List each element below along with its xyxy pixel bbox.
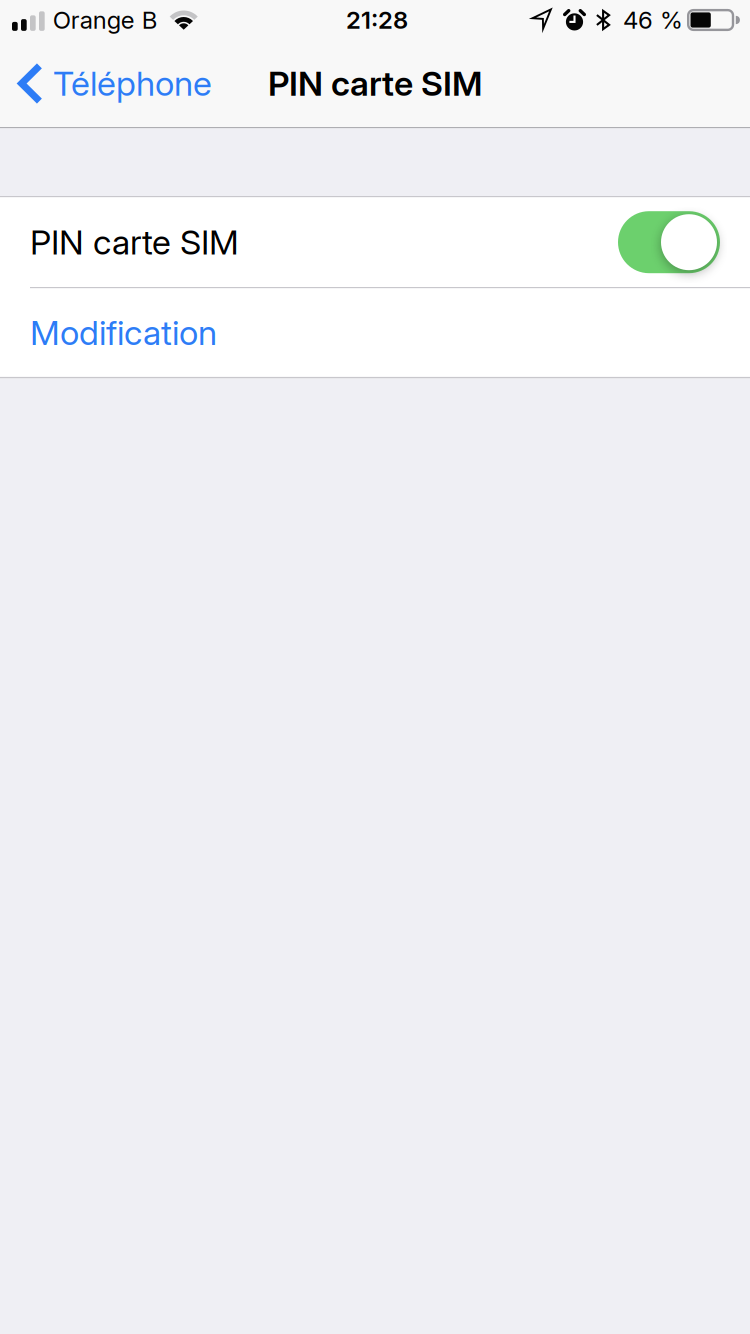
staticText: 46 % xyxy=(623,6,683,34)
staticText: PIN carte SIM xyxy=(268,63,482,103)
staticText: Modification xyxy=(30,313,217,353)
button[interactable]: PIN carte SIM xyxy=(618,211,720,273)
button[interactable]: Retour Téléphone xyxy=(0,62,212,104)
button[interactable]: Modification xyxy=(0,288,750,377)
staticText: Orange B xyxy=(53,6,158,34)
staticText: PIN carte SIM xyxy=(30,222,239,262)
staticText: 21:28 xyxy=(346,6,408,34)
staticText: Téléphone xyxy=(53,63,212,103)
